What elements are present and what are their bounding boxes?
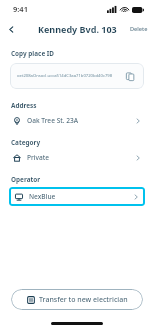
staticText: Category [11, 138, 41, 147]
staticText: Private [27, 153, 135, 162]
staticText: Delete [130, 25, 148, 33]
staticText: Kennedy Bvd. 103 [38, 23, 117, 35]
button[interactable]: Back [0, 18, 22, 40]
staticText: Oak Tree St. 23A [27, 116, 135, 125]
button[interactable]: oet208aOnsocl.ucca514dC3aa71b0720bd40c79… [10, 63, 144, 89]
staticText: Address [11, 101, 37, 110]
staticText: Operator [11, 175, 41, 184]
staticText: oet208aOnsocl.ucca514dC3aa71b0720bd40c79… [17, 73, 119, 79]
button[interactable]: Copy place ID [123, 69, 137, 83]
button[interactable]: Transfer to new electrician [11, 289, 143, 310]
staticText: 9:41 [13, 4, 28, 14]
button[interactable]: NexBlue [9, 187, 145, 206]
staticText: NexBlue [29, 192, 133, 201]
button[interactable]: Private [10, 149, 144, 166]
button[interactable]: Oak Tree St. 23A [10, 112, 144, 129]
button[interactable]: Delete [124, 21, 154, 37]
staticText: Transfer to new electrician [39, 295, 128, 305]
staticText: Copy place ID [11, 49, 55, 58]
